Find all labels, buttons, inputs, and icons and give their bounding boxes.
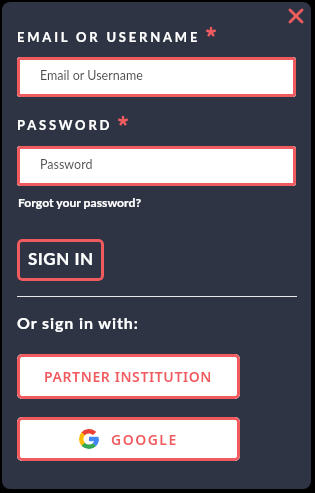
button[interactable]: PARTNER INSTITUTION: [17, 354, 240, 399]
staticText: PARTNER INSTITUTION: [44, 367, 213, 386]
staticText: Or sign in with:: [17, 313, 139, 332]
button[interactable]: Forgot your password?: [18, 192, 141, 212]
button[interactable]: Email or Username: [17, 57, 296, 97]
button[interactable]: [284, 4, 308, 28]
staticText: SIGN IN: [28, 248, 94, 268]
staticText: PASSWORD: [17, 117, 119, 133]
button[interactable]: GOOGLE: [17, 417, 240, 461]
staticText: Forgot your password?: [18, 195, 141, 210]
staticText: EMAIL OR USERNAME: [17, 29, 207, 45]
staticText: Email or Username: [40, 68, 143, 83]
staticText: GOOGLE: [111, 430, 178, 449]
button[interactable]: SIGN IN: [17, 239, 104, 281]
staticText: Password: [40, 157, 93, 172]
button[interactable]: Password: [17, 146, 296, 186]
